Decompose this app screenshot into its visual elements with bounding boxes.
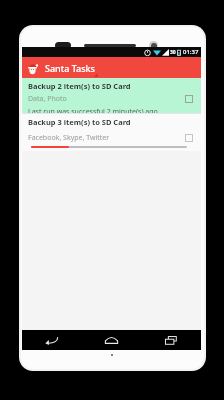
staticText: Last run was successful 2 minute(s) ago <box>28 107 158 113</box>
button[interactable]: Back <box>22 330 81 350</box>
button[interactable]: Backup 2 item(s) to SD Card <box>22 78 201 113</box>
button[interactable]: Home <box>81 330 141 350</box>
staticText: Backup 2 item(s) to SD Card <box>28 81 131 91</box>
staticText: 01:37 <box>183 48 199 56</box>
button[interactable]: Backup 3 item(s) to SD Card <box>22 114 201 151</box>
staticText: Data, Photo <box>28 94 185 104</box>
button[interactable]: Select task Backup 3 items to SD Card <box>185 134 193 142</box>
button[interactable]: Select task Backup 2 items to SD Card <box>185 95 193 103</box>
staticText: Facebook, Skype, Twitter <box>28 133 185 143</box>
staticText: Santa Tasks <box>45 62 95 74</box>
staticText: Backup 3 item(s) to SD Card <box>28 117 131 127</box>
button[interactable]: Santa Tasks <box>22 57 201 78</box>
button[interactable]: Recent apps <box>141 330 201 350</box>
staticText: 30 <box>170 49 176 56</box>
